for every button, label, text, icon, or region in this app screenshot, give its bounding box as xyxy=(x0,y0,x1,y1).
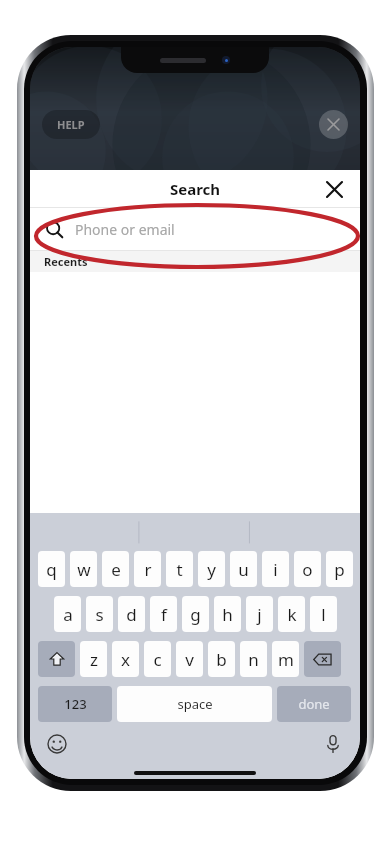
staticText: k xyxy=(287,603,297,626)
button[interactable]: c xyxy=(144,641,171,677)
button[interactable]: Phone or email xyxy=(30,208,360,250)
staticText: 123 xyxy=(64,695,87,713)
button[interactable]: l xyxy=(310,596,337,632)
button[interactable]: f xyxy=(150,596,177,632)
staticText: space xyxy=(177,695,213,713)
button[interactable]: t xyxy=(166,551,193,587)
button[interactable]: x xyxy=(112,641,139,677)
staticText: Search xyxy=(170,179,221,199)
button[interactable]: n xyxy=(240,641,267,677)
staticText: x xyxy=(121,648,130,671)
button[interactable]: d xyxy=(118,596,145,632)
staticText: f xyxy=(161,603,167,626)
staticText: b xyxy=(216,648,227,671)
button[interactable]: Dictate xyxy=(318,729,348,759)
button[interactable]: o xyxy=(294,551,321,587)
staticText: s xyxy=(95,603,104,626)
button[interactable]: space xyxy=(117,686,272,722)
button[interactable]: s xyxy=(86,596,113,632)
button[interactable]: q xyxy=(38,551,65,587)
button[interactable]: v xyxy=(176,641,203,677)
staticText: y xyxy=(207,558,216,581)
button[interactable]: Emoji xyxy=(42,729,72,759)
button[interactable]: w xyxy=(70,551,97,587)
staticText: l xyxy=(321,603,326,626)
staticText: d xyxy=(126,603,137,626)
button[interactable]: a xyxy=(54,596,81,632)
button[interactable]: u xyxy=(230,551,257,587)
button[interactable]: m xyxy=(272,641,299,677)
staticText: n xyxy=(248,648,259,671)
button[interactable]: Shift xyxy=(38,641,75,677)
button[interactable]: z xyxy=(80,641,107,677)
staticText: g xyxy=(190,603,201,626)
button[interactable]: e xyxy=(102,551,129,587)
button[interactable]: g xyxy=(182,596,209,632)
staticText: w xyxy=(77,558,91,581)
staticText: done xyxy=(298,695,330,713)
button[interactable]: k xyxy=(278,596,305,632)
staticText: Phone or email xyxy=(75,220,175,239)
staticText: c xyxy=(153,648,162,671)
staticText: p xyxy=(334,558,345,581)
staticText: h xyxy=(222,603,233,626)
button[interactable]: HELP xyxy=(42,110,100,139)
staticText: q xyxy=(46,558,57,581)
button[interactable]: Close xyxy=(319,110,348,139)
staticText: a xyxy=(63,603,73,626)
button[interactable]: p xyxy=(326,551,353,587)
staticText: t xyxy=(176,558,183,581)
staticText: i xyxy=(273,558,278,581)
staticText: z xyxy=(90,648,98,671)
button[interactable]: i xyxy=(262,551,289,587)
button[interactable]: done xyxy=(277,686,351,722)
button[interactable]: Backspace xyxy=(304,641,341,677)
staticText: o xyxy=(302,558,313,581)
staticText: j xyxy=(257,603,262,626)
staticText: r xyxy=(144,558,152,581)
button[interactable]: y xyxy=(198,551,225,587)
staticText: m xyxy=(278,648,294,671)
button[interactable]: b xyxy=(208,641,235,677)
button[interactable]: r xyxy=(134,551,161,587)
staticText: Recents xyxy=(44,254,88,269)
button[interactable]: j xyxy=(246,596,273,632)
staticText: HELP xyxy=(57,117,85,132)
button[interactable]: Close search xyxy=(316,171,352,207)
button[interactable]: 123 xyxy=(38,686,112,722)
button[interactable]: h xyxy=(214,596,241,632)
staticText: u xyxy=(238,558,249,581)
staticText: v xyxy=(185,648,194,671)
staticText: e xyxy=(111,558,121,581)
